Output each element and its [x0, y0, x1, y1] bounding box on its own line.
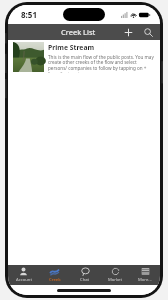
staticText: Creek: [49, 277, 61, 283]
button[interactable]: Account: [8, 265, 39, 285]
staticText: Account: [16, 277, 32, 283]
button[interactable]: Creek: [39, 265, 70, 285]
button[interactable]: Add creek: [122, 26, 135, 39]
staticText: Chat: [80, 277, 90, 283]
staticText: This is the main flow of the public post…: [48, 54, 154, 73]
staticText: More...: [138, 277, 152, 283]
staticText: Market: [108, 277, 122, 283]
button[interactable]: Chat: [70, 265, 100, 285]
staticText: Prime Stream: [48, 43, 95, 52]
button[interactable]: Prime Stream: [12, 41, 156, 73]
button[interactable]: More...: [130, 265, 160, 285]
button[interactable]: Search: [142, 26, 155, 39]
staticText: Creek List: [61, 27, 96, 37]
staticText: 8:51: [21, 9, 37, 20]
button[interactable]: Market: [100, 265, 130, 285]
